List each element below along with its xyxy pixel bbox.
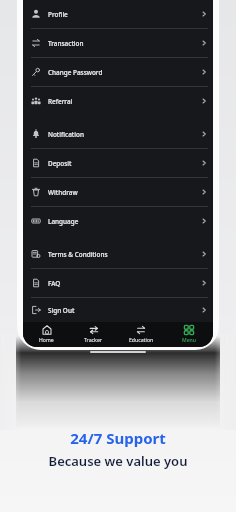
staticText: Terms & Conditions — [48, 250, 108, 259]
button[interactable]: Referral — [23, 87, 213, 115]
button[interactable]: Change Password — [23, 58, 213, 86]
staticText: Education — [129, 337, 154, 344]
staticText: FAQ — [48, 279, 61, 288]
button[interactable]: Tracker — [70, 322, 117, 347]
button[interactable]: Transaction — [23, 29, 213, 57]
staticText: Deposit — [48, 159, 72, 168]
staticText: Referral — [48, 97, 73, 106]
button[interactable]: FAQ — [23, 269, 213, 297]
staticText: Withdraw — [48, 188, 78, 197]
staticText: Tracker — [84, 337, 103, 344]
button[interactable]: Deposit — [23, 149, 213, 177]
staticText: Home — [39, 337, 54, 344]
staticText: Because we value you — [0, 452, 236, 470]
button[interactable]: Language — [23, 207, 213, 235]
staticText: Profile — [48, 10, 68, 19]
staticText: Notification — [48, 130, 84, 139]
button[interactable]: Education — [117, 322, 165, 347]
button[interactable]: Menu — [165, 322, 213, 347]
staticText: Menu — [182, 337, 196, 344]
button[interactable]: Notification — [23, 120, 213, 148]
button[interactable]: Sign Out — [23, 298, 213, 322]
button[interactable]: Terms & Conditions — [23, 240, 213, 268]
staticText: Sign Out — [48, 306, 75, 315]
staticText: Language — [48, 217, 79, 226]
button[interactable]: Withdraw — [23, 178, 213, 206]
button[interactable]: Profile — [23, 0, 213, 28]
staticText: 24/7 Support — [0, 428, 236, 448]
button[interactable]: Home — [23, 322, 70, 347]
staticText: Change Password — [48, 68, 103, 77]
staticText: Transaction — [48, 39, 84, 48]
